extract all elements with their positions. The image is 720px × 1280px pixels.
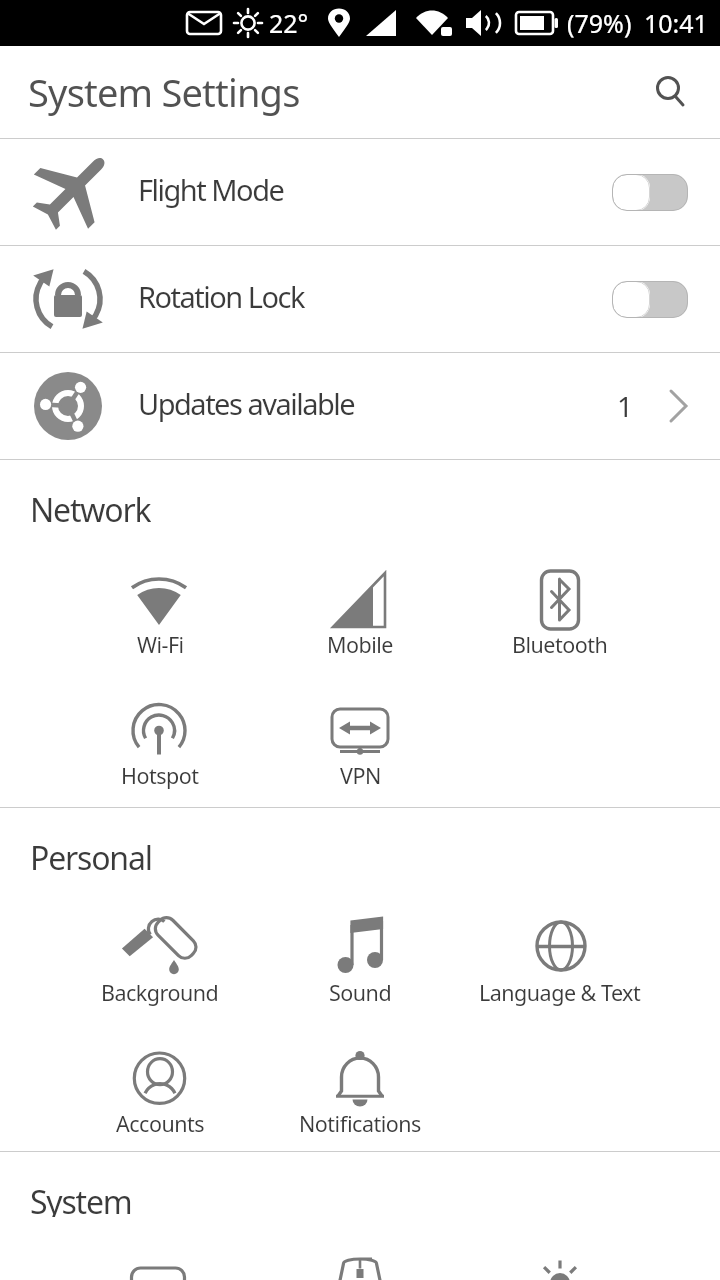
staticText: System Settings — [28, 66, 300, 118]
staticText: Bluetooth — [512, 630, 608, 659]
button[interactable]: VPN — [260, 700, 460, 793]
button[interactable]: Sound — [260, 917, 460, 1010]
staticText: Background — [101, 978, 219, 1007]
button[interactable]: Security — [260, 1248, 460, 1280]
button[interactable]: Notifications — [260, 1048, 460, 1141]
staticText: 22° — [269, 6, 309, 40]
button[interactable]: Flight Mode — [0, 139, 720, 245]
button[interactable]: Brightness — [460, 1248, 660, 1280]
button[interactable]: Wi-Fi — [60, 569, 260, 662]
button[interactable]: Updates available — [0, 353, 720, 459]
button[interactable]: Accounts — [60, 1048, 260, 1141]
staticText: Sound — [329, 978, 392, 1007]
button[interactable]: Hotspot — [60, 700, 260, 793]
button[interactable]: Bluetooth — [460, 569, 660, 662]
button[interactable]: Rotation Lock — [0, 246, 720, 352]
button[interactable] — [612, 281, 688, 318]
staticText: Network — [30, 488, 151, 525]
staticText: (79%) — [567, 6, 632, 40]
staticText: Language & Text — [479, 978, 641, 1007]
staticText: VPN — [340, 761, 381, 790]
staticText: Wi-Fi — [137, 630, 184, 659]
button[interactable]: Battery — [60, 1248, 260, 1280]
staticText: 10:41 — [644, 6, 708, 40]
staticText: Accounts — [116, 1109, 205, 1138]
staticText: Flight Mode — [138, 170, 284, 209]
button[interactable] — [648, 70, 692, 114]
staticText: Rotation Lock — [138, 277, 304, 316]
staticText: Mobile — [327, 630, 393, 659]
staticText: System — [30, 1180, 132, 1217]
staticText: Updates available — [138, 384, 355, 423]
staticText: 1 — [617, 387, 634, 425]
button[interactable]: Mobile — [260, 569, 460, 662]
staticText: Hotspot — [121, 761, 199, 790]
button[interactable]: Language & Text — [460, 917, 660, 1010]
button[interactable]: Background — [60, 917, 260, 1010]
button[interactable] — [612, 174, 688, 211]
staticText: Personal — [30, 836, 152, 873]
staticText: Notifications — [299, 1109, 421, 1138]
